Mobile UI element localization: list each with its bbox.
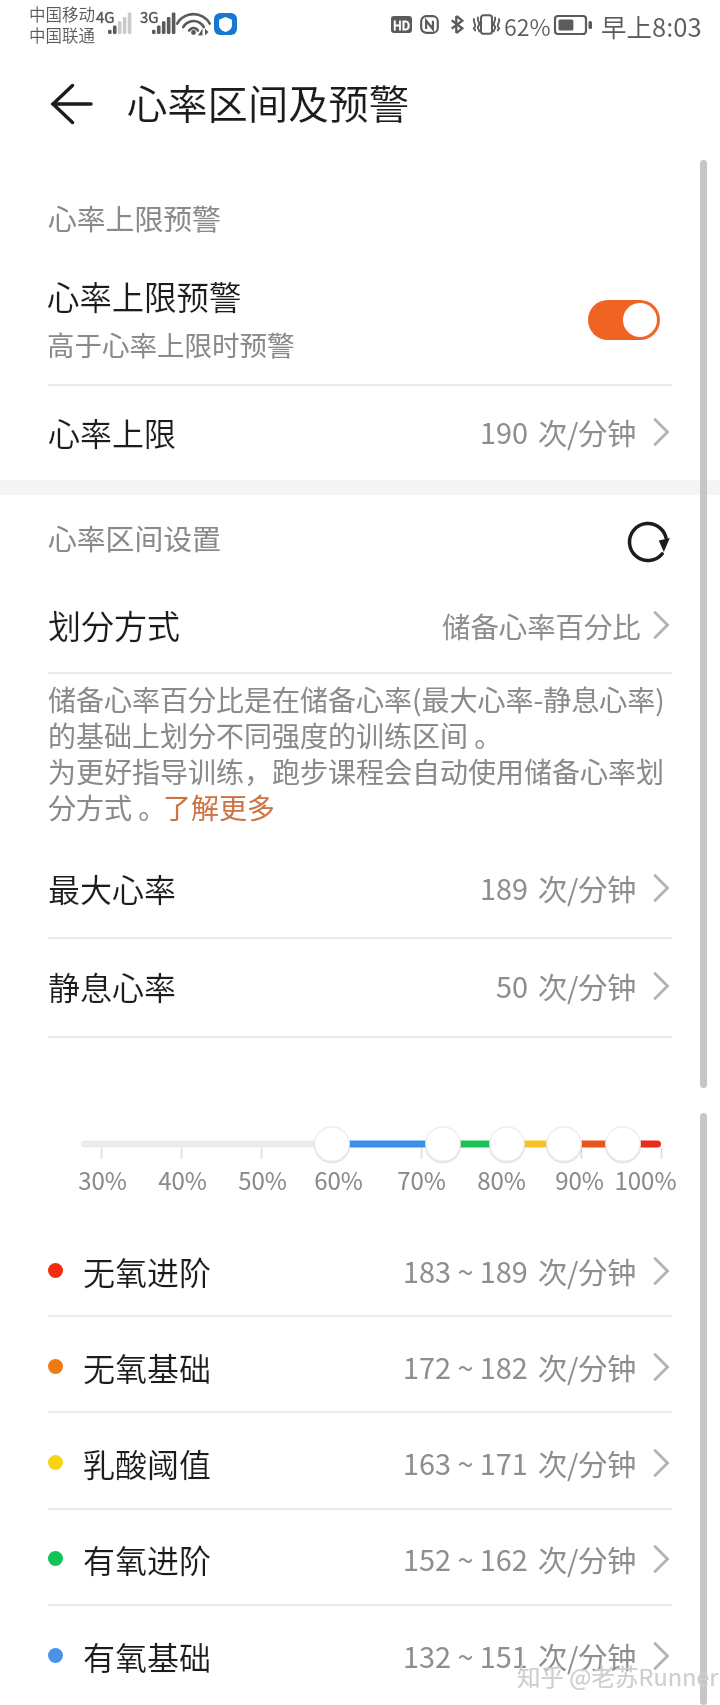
staticText: 50% [238, 1162, 287, 1197]
button[interactable] [0, 1411, 720, 1508]
staticText: 80% [477, 1162, 526, 1197]
staticText: 划分方式 [48, 601, 180, 649]
staticText: 190 [480, 411, 528, 453]
button[interactable] [0, 937, 720, 1036]
staticText: 163 ~ 171 [403, 1442, 528, 1484]
staticText: 有氧基础 [83, 1633, 212, 1679]
staticText: 152 ~ 162 [403, 1538, 528, 1580]
button[interactable]: 了解更多 [163, 787, 276, 828]
staticText: 的基础上划分不同强度的训练区间 。 [48, 715, 503, 756]
staticText: 90% [555, 1162, 604, 1197]
staticText: 为更好指导训练，跑步课程会自动使用储备心率划 [48, 751, 665, 792]
staticText: 132 ~ 151 [403, 1635, 528, 1677]
button[interactable] [0, 1508, 720, 1604]
staticText: 了解更多 [163, 787, 276, 828]
staticText: 心率上限 [48, 409, 177, 455]
staticText: 次/分钟 [538, 965, 637, 1007]
staticText: 心率上限预警 [47, 272, 242, 319]
staticText: 次/分钟 [538, 1635, 637, 1677]
button[interactable] [0, 250, 720, 384]
staticText: 70% [397, 1162, 446, 1197]
staticText: 183 ~ 189 [403, 1250, 528, 1292]
button[interactable] [0, 839, 720, 937]
staticText: 有氧进阶 [83, 1536, 212, 1582]
staticText: 早上8:03 [601, 7, 702, 44]
button[interactable] [0, 1223, 720, 1315]
staticText: 次/分钟 [538, 867, 637, 909]
staticText: 心率区间及预警 [127, 72, 410, 130]
staticText: 中国移动 [29, 2, 95, 26]
staticText: 次/分钟 [538, 1250, 637, 1292]
staticText: 次/分钟 [538, 1538, 637, 1580]
button[interactable]: Toggle high heart-rate alert [588, 300, 660, 340]
staticText: 30% [78, 1162, 127, 1197]
staticText: 储备心率百分比 [442, 605, 641, 646]
button[interactable] [0, 1315, 720, 1411]
staticText: 62% [504, 9, 551, 42]
staticText: 心率上限预警 [48, 197, 221, 239]
staticText: HD [393, 16, 410, 33]
staticText: 知乎 @老苏Runner [517, 1659, 719, 1693]
staticText: 189 [480, 867, 528, 909]
staticText: 乳酸阈值 [83, 1440, 212, 1486]
staticText: 次/分钟 [538, 1346, 637, 1388]
staticText: 次/分钟 [538, 1442, 637, 1484]
staticText: 无氧基础 [83, 1344, 212, 1390]
staticText: 50 [496, 965, 528, 1007]
staticText: 4G [96, 6, 115, 28]
button[interactable] [0, 1604, 720, 1700]
staticText: 储备心率百分比是在储备心率(最大心率-静息心率) [48, 679, 665, 720]
button[interactable]: Back [32, 64, 112, 144]
button[interactable] [0, 385, 720, 479]
staticText: 最大心率 [48, 865, 177, 911]
button[interactable] [0, 580, 720, 672]
staticText: 高于心率上限时预警 [47, 324, 295, 364]
staticText: 心率区间设置 [48, 517, 221, 559]
staticText: 无氧进阶 [83, 1248, 212, 1294]
staticText: 60% [314, 1162, 363, 1197]
staticText: 40% [158, 1162, 207, 1197]
staticText: 172 ~ 182 [403, 1346, 528, 1388]
staticText: 中国联通 [29, 23, 95, 47]
staticText: 3G [140, 6, 159, 28]
staticText: 分方式 。 [48, 787, 167, 828]
staticText: 静息心率 [48, 963, 177, 1009]
staticText: 次/分钟 [538, 411, 637, 453]
button[interactable]: Reset heart-rate zones [618, 512, 678, 572]
staticText: 100% [614, 1162, 677, 1197]
